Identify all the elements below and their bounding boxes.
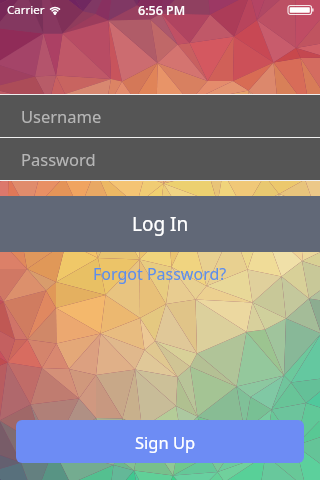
staticText: Carrier [7, 2, 45, 18]
other: Wi-Fi signal [49, 4, 61, 15]
button[interactable]: Password [0, 138, 320, 180]
staticText: Username [21, 105, 102, 127]
staticText: Forgot Password? [93, 263, 227, 285]
button[interactable]: Username [0, 95, 320, 137]
button[interactable]: Log In [0, 196, 320, 252]
staticText: Log In [132, 211, 189, 237]
staticText: Password [21, 148, 96, 170]
staticText: 6:56 PM [138, 2, 186, 19]
other: Battery full [288, 5, 315, 15]
button[interactable]: Forgot Password? [0, 262, 320, 286]
staticText: Sign Up [135, 431, 196, 453]
button[interactable]: Sign Up [16, 420, 304, 463]
